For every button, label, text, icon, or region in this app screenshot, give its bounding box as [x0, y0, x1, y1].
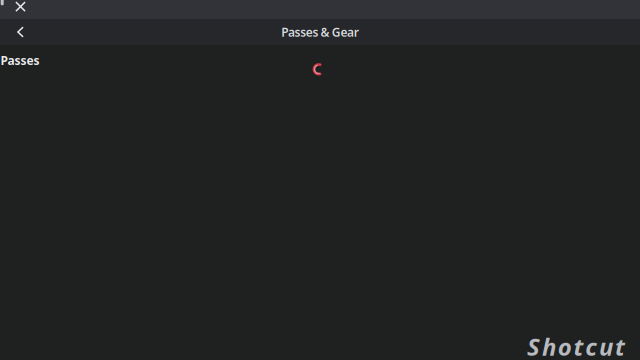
staticText: Shotcut [527, 331, 625, 360]
staticText: Passes & Gear [281, 24, 359, 40]
button[interactable]: Close [0, 0, 41, 19]
staticText: Passes [0, 52, 39, 68]
button[interactable]: Back [0, 19, 41, 45]
